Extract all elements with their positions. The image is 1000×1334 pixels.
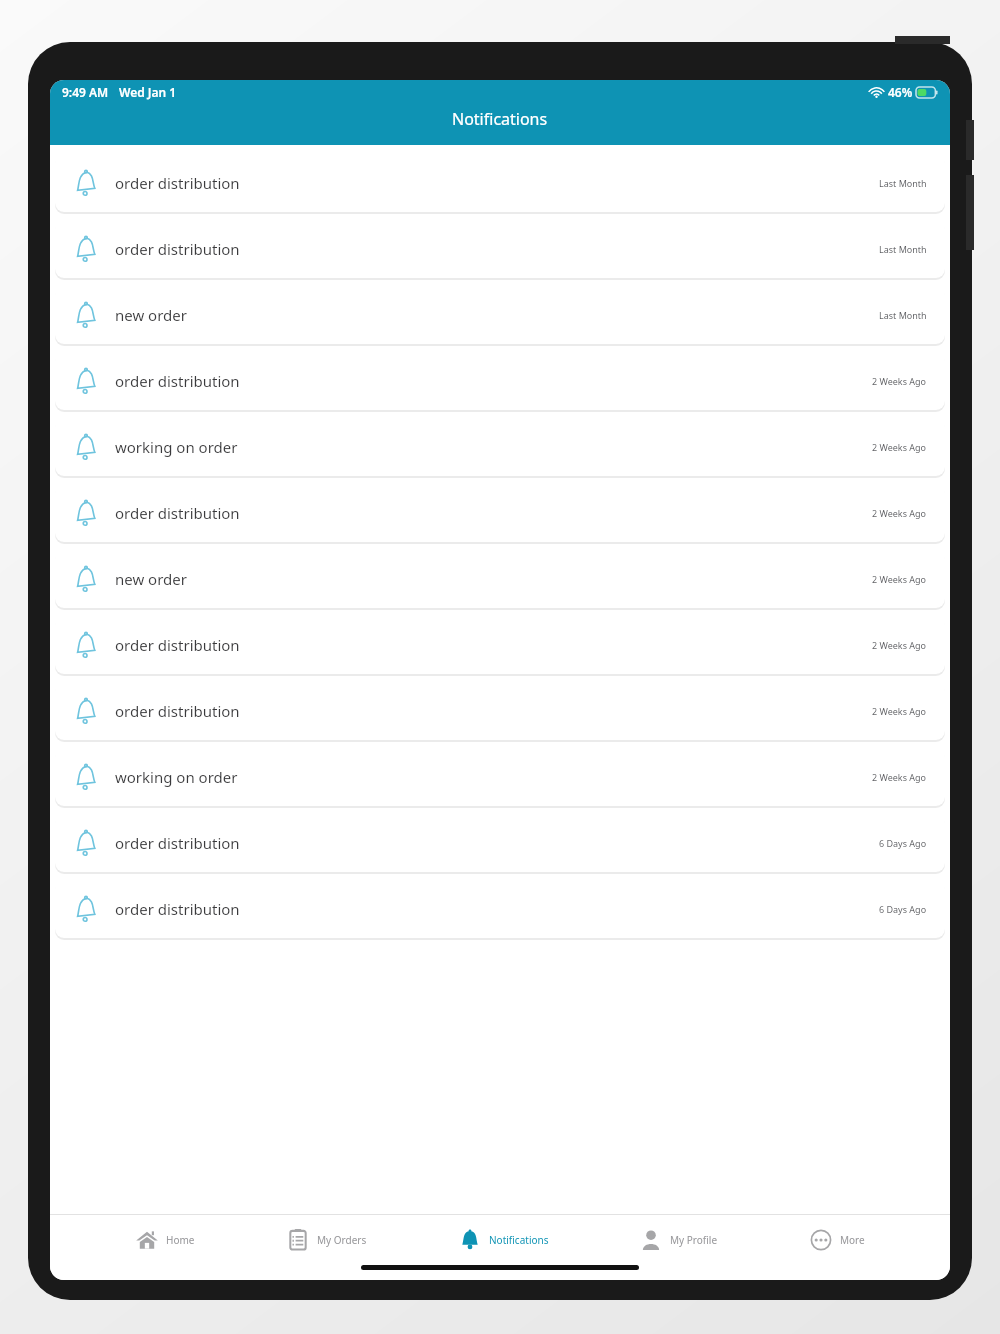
staticText: Notifications: [452, 108, 548, 130]
button[interactable]: My Profile: [633, 1215, 724, 1265]
staticText: 46%: [888, 84, 913, 100]
staticText: order distribution: [115, 503, 240, 523]
button[interactable]: My Orders: [280, 1215, 373, 1265]
button[interactable]: new order: [55, 286, 945, 344]
button[interactable]: Notifications: [452, 1215, 555, 1265]
button[interactable]: Home: [129, 1215, 201, 1265]
staticText: Last Month: [879, 177, 927, 189]
staticText: working on order: [115, 767, 238, 787]
staticText: order distribution: [115, 899, 240, 919]
button[interactable]: order distribution: [55, 880, 945, 938]
button[interactable]: order distribution: [55, 616, 945, 674]
staticText: new order: [115, 569, 187, 589]
staticText: More: [840, 1233, 865, 1247]
staticText: 9:49 AM: [62, 84, 109, 100]
staticText: 2 Weeks Ago: [872, 573, 927, 585]
staticText: 2 Weeks Ago: [872, 375, 927, 387]
button[interactable]: new order: [55, 550, 945, 608]
staticText: working on order: [115, 437, 238, 457]
button[interactable]: order distribution: [55, 814, 945, 872]
button[interactable]: working on order: [55, 418, 945, 476]
button[interactable]: order distribution: [55, 484, 945, 542]
staticText: 2 Weeks Ago: [872, 441, 927, 453]
button[interactable]: working on order: [55, 748, 945, 806]
staticText: 2 Weeks Ago: [872, 639, 927, 651]
button[interactable]: More: [803, 1215, 871, 1265]
staticText: 2 Weeks Ago: [872, 507, 927, 519]
staticText: Last Month: [879, 309, 927, 321]
staticText: order distribution: [115, 701, 240, 721]
staticText: Home: [166, 1233, 195, 1247]
staticText: order distribution: [115, 239, 240, 259]
staticText: 6 Days Ago: [879, 837, 927, 849]
staticText: My Profile: [670, 1233, 718, 1247]
staticText: new order: [115, 305, 187, 325]
staticText: order distribution: [115, 833, 240, 853]
button[interactable]: order distribution: [55, 352, 945, 410]
staticText: Wed Jan 1: [119, 84, 177, 100]
staticText: 2 Weeks Ago: [872, 705, 927, 717]
staticText: 2 Weeks Ago: [872, 771, 927, 783]
staticText: My Orders: [317, 1233, 367, 1247]
staticText: order distribution: [115, 371, 240, 391]
button[interactable]: order distribution: [55, 220, 945, 278]
staticText: order distribution: [115, 635, 240, 655]
staticText: Last Month: [879, 243, 927, 255]
button[interactable]: order distribution: [55, 682, 945, 740]
staticText: order distribution: [115, 173, 240, 193]
button[interactable]: order distribution: [55, 154, 945, 212]
staticText: 6 Days Ago: [879, 903, 927, 915]
staticText: Notifications: [489, 1233, 549, 1247]
